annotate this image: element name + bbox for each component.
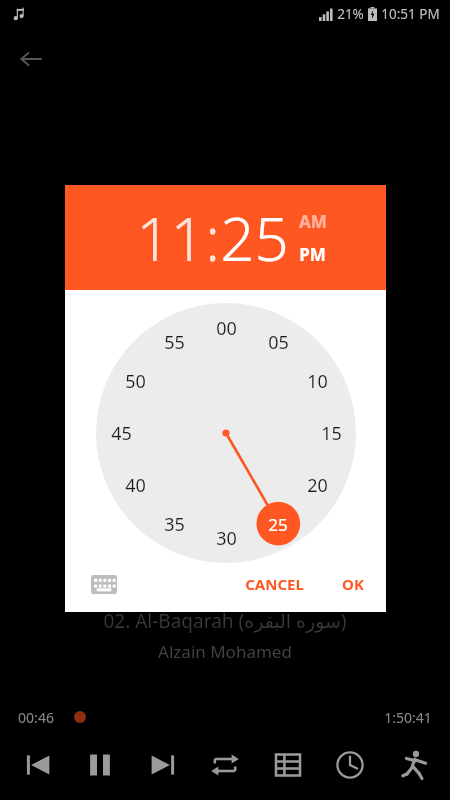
button[interactable]: 00	[96, 303, 356, 563]
staticText: 02. Al-Baqarah (سوره البقره)	[103, 608, 347, 634]
button[interactable]: Next	[138, 740, 188, 790]
staticText: 05	[268, 330, 289, 355]
button[interactable]: 40	[96, 303, 356, 563]
staticText: 10:51 PM	[381, 5, 440, 23]
button[interactable]: CANCEL	[233, 566, 316, 602]
button[interactable]: Walk mode	[388, 740, 438, 790]
button[interactable]: 20	[96, 303, 356, 563]
staticText: 20	[307, 473, 328, 498]
staticText: 11	[136, 197, 205, 279]
button[interactable]: 50	[96, 303, 356, 563]
button[interactable]: 30	[96, 303, 356, 563]
button[interactable]: Playlist	[263, 740, 313, 790]
staticText: 00	[216, 316, 237, 341]
staticText: CANCEL	[245, 574, 304, 594]
staticText: 30	[216, 526, 237, 551]
staticText: 21%	[337, 5, 364, 23]
button[interactable]: Switch to keyboard input	[87, 567, 121, 601]
button[interactable]: 35	[96, 303, 356, 563]
staticText: 55	[164, 330, 185, 355]
staticText: 15	[321, 421, 342, 446]
button[interactable]: 45	[96, 303, 356, 563]
button[interactable]: AM	[299, 210, 327, 233]
staticText: :	[205, 197, 220, 279]
staticText: 40	[125, 473, 146, 498]
button[interactable]: OK	[330, 566, 376, 602]
staticText: Alzain Mohamed	[158, 640, 292, 663]
button[interactable]: Back	[10, 38, 52, 80]
staticText: 1:50:41	[384, 708, 432, 727]
button[interactable]: Sleep timer	[325, 740, 375, 790]
button[interactable]: PM	[299, 243, 326, 266]
button[interactable]: 11	[136, 197, 205, 279]
staticText: OK	[342, 574, 364, 594]
button[interactable]: 25	[96, 303, 356, 563]
button[interactable]: 25	[220, 197, 289, 279]
staticText: 50	[125, 369, 146, 394]
staticText: 35	[164, 512, 185, 537]
button[interactable]: 55	[96, 303, 356, 563]
staticText: 45	[111, 421, 132, 446]
staticText: 10	[307, 369, 328, 394]
staticText: 00:46	[18, 708, 54, 727]
staticText: AM	[299, 210, 327, 233]
button[interactable]: 05	[96, 303, 356, 563]
staticText: 25	[220, 197, 289, 279]
button[interactable]: Pause	[75, 740, 125, 790]
staticText: 25	[268, 513, 288, 536]
button[interactable]: Repeat	[200, 740, 250, 790]
staticText: PM	[299, 243, 326, 266]
button[interactable]: Previous	[13, 740, 63, 790]
button[interactable]: 15	[96, 303, 356, 563]
button[interactable]: 10	[96, 303, 356, 563]
